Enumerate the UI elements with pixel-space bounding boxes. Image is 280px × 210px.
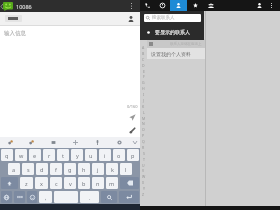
staticText: s	[27, 166, 30, 173]
button[interactable]: Favourites	[187, 0, 203, 11]
button[interactable]: k	[106, 163, 118, 175]
staticText: i	[104, 152, 106, 159]
button[interactable]: Emoji	[0, 137, 21, 148]
staticText: v	[69, 180, 72, 187]
staticText: D	[142, 63, 145, 68]
button[interactable]: Groups	[203, 0, 219, 11]
button[interactable]: 搜索联系人	[144, 14, 201, 22]
button[interactable]: r	[43, 149, 55, 161]
button[interactable]: j	[92, 163, 104, 175]
staticText: 10086	[16, 3, 32, 10]
staticText: 联系人存储在电话上	[170, 42, 202, 46]
button[interactable]: Dialer	[140, 0, 155, 11]
staticText: 设置我的个人资料	[151, 51, 191, 57]
staticText: H	[142, 86, 145, 91]
button[interactable]: n	[92, 177, 104, 189]
button[interactable]: i	[99, 149, 111, 161]
button[interactable]: Send	[127, 112, 138, 123]
staticText: a	[12, 166, 16, 173]
button[interactable]: q	[1, 149, 13, 161]
button[interactable]: o	[113, 149, 125, 161]
button[interactable]: g	[64, 163, 76, 175]
button[interactable]: c	[50, 177, 62, 189]
button[interactable]: Back	[0, 0, 3, 12]
staticText: Z	[142, 192, 145, 197]
staticText: z	[25, 180, 28, 187]
button[interactable]: Hide keyboard	[130, 137, 140, 148]
button[interactable]: b	[78, 177, 90, 189]
staticText: k	[111, 166, 114, 173]
staticText: G	[142, 80, 145, 85]
button[interactable]: Add recipient	[126, 12, 136, 25]
staticText: K	[142, 104, 145, 109]
button[interactable]: Shift	[1, 177, 18, 189]
button[interactable]: Emoji	[27, 191, 37, 203]
button[interactable]: l	[120, 163, 132, 175]
button[interactable]: Backspace	[120, 177, 139, 189]
staticText: u	[89, 152, 93, 159]
button[interactable]: Sticker	[21, 137, 42, 148]
button[interactable]: 要显示的联系人	[140, 24, 204, 40]
button[interactable]: u	[85, 149, 97, 161]
button[interactable]: t	[57, 149, 69, 161]
staticText: V	[142, 168, 145, 173]
button[interactable]: s	[22, 163, 34, 175]
staticText: I	[143, 92, 145, 97]
button[interactable]: ,	[39, 191, 52, 203]
staticText: 搜索联系人	[152, 15, 175, 21]
staticText: e	[33, 152, 37, 159]
button[interactable]: f	[50, 163, 62, 175]
staticText: M	[142, 116, 146, 121]
staticText: 要显示的联系人	[155, 29, 190, 35]
staticText: r	[48, 152, 51, 159]
button[interactable]: d	[36, 163, 48, 175]
staticText: o	[117, 152, 121, 159]
staticText: q	[5, 152, 9, 159]
button[interactable]	[54, 191, 78, 203]
staticText: X	[142, 180, 145, 185]
button[interactable]: .	[80, 191, 99, 203]
button[interactable]: 联系人存储在电话上	[147, 39, 205, 48]
staticText: d	[40, 166, 44, 173]
staticText: t	[62, 152, 64, 159]
button[interactable]: Clipboard	[42, 137, 64, 148]
staticText: 0/160	[127, 104, 138, 109]
staticText: S	[143, 151, 145, 156]
button[interactable]: More options	[266, 0, 276, 11]
staticText: y	[76, 152, 79, 159]
button[interactable]: Recents	[155, 0, 170, 11]
staticText: Q	[142, 139, 145, 144]
button[interactable]: Language	[1, 191, 12, 203]
staticText: A	[142, 45, 145, 50]
button[interactable]: z	[20, 177, 33, 189]
button[interactable]: Enter	[119, 191, 139, 203]
button[interactable]: e	[29, 149, 41, 161]
button[interactable]: x	[35, 177, 48, 189]
button[interactable]: Voice	[86, 137, 108, 148]
button[interactable]: Cursor	[64, 137, 86, 148]
button[interactable]: h	[78, 163, 90, 175]
button[interactable]: w	[15, 149, 27, 161]
staticText: Y	[143, 186, 145, 191]
button[interactable]: Contacts	[170, 0, 187, 11]
button[interactable]: 设置我的个人资料	[147, 48, 205, 59]
staticText: p	[131, 152, 135, 159]
button[interactable]	[5, 15, 22, 22]
staticText: w	[19, 152, 24, 159]
button[interactable]: Attach	[127, 125, 138, 136]
button[interactable]: Numbers	[14, 191, 25, 203]
staticText: c	[55, 180, 58, 187]
button[interactable]: Settings	[108, 137, 130, 148]
button[interactable]: Search	[101, 191, 117, 203]
staticText: U	[142, 163, 145, 168]
button[interactable]: a	[8, 163, 20, 175]
button[interactable]: Add contact	[252, 0, 266, 11]
button[interactable]: y	[71, 149, 83, 161]
button[interactable]: m	[106, 177, 118, 189]
button[interactable]: More options	[126, 0, 136, 12]
button[interactable]: p	[127, 149, 139, 161]
staticText: f	[55, 166, 57, 173]
staticText: x	[40, 180, 43, 187]
staticText: R	[142, 145, 145, 150]
button[interactable]: v	[64, 177, 76, 189]
